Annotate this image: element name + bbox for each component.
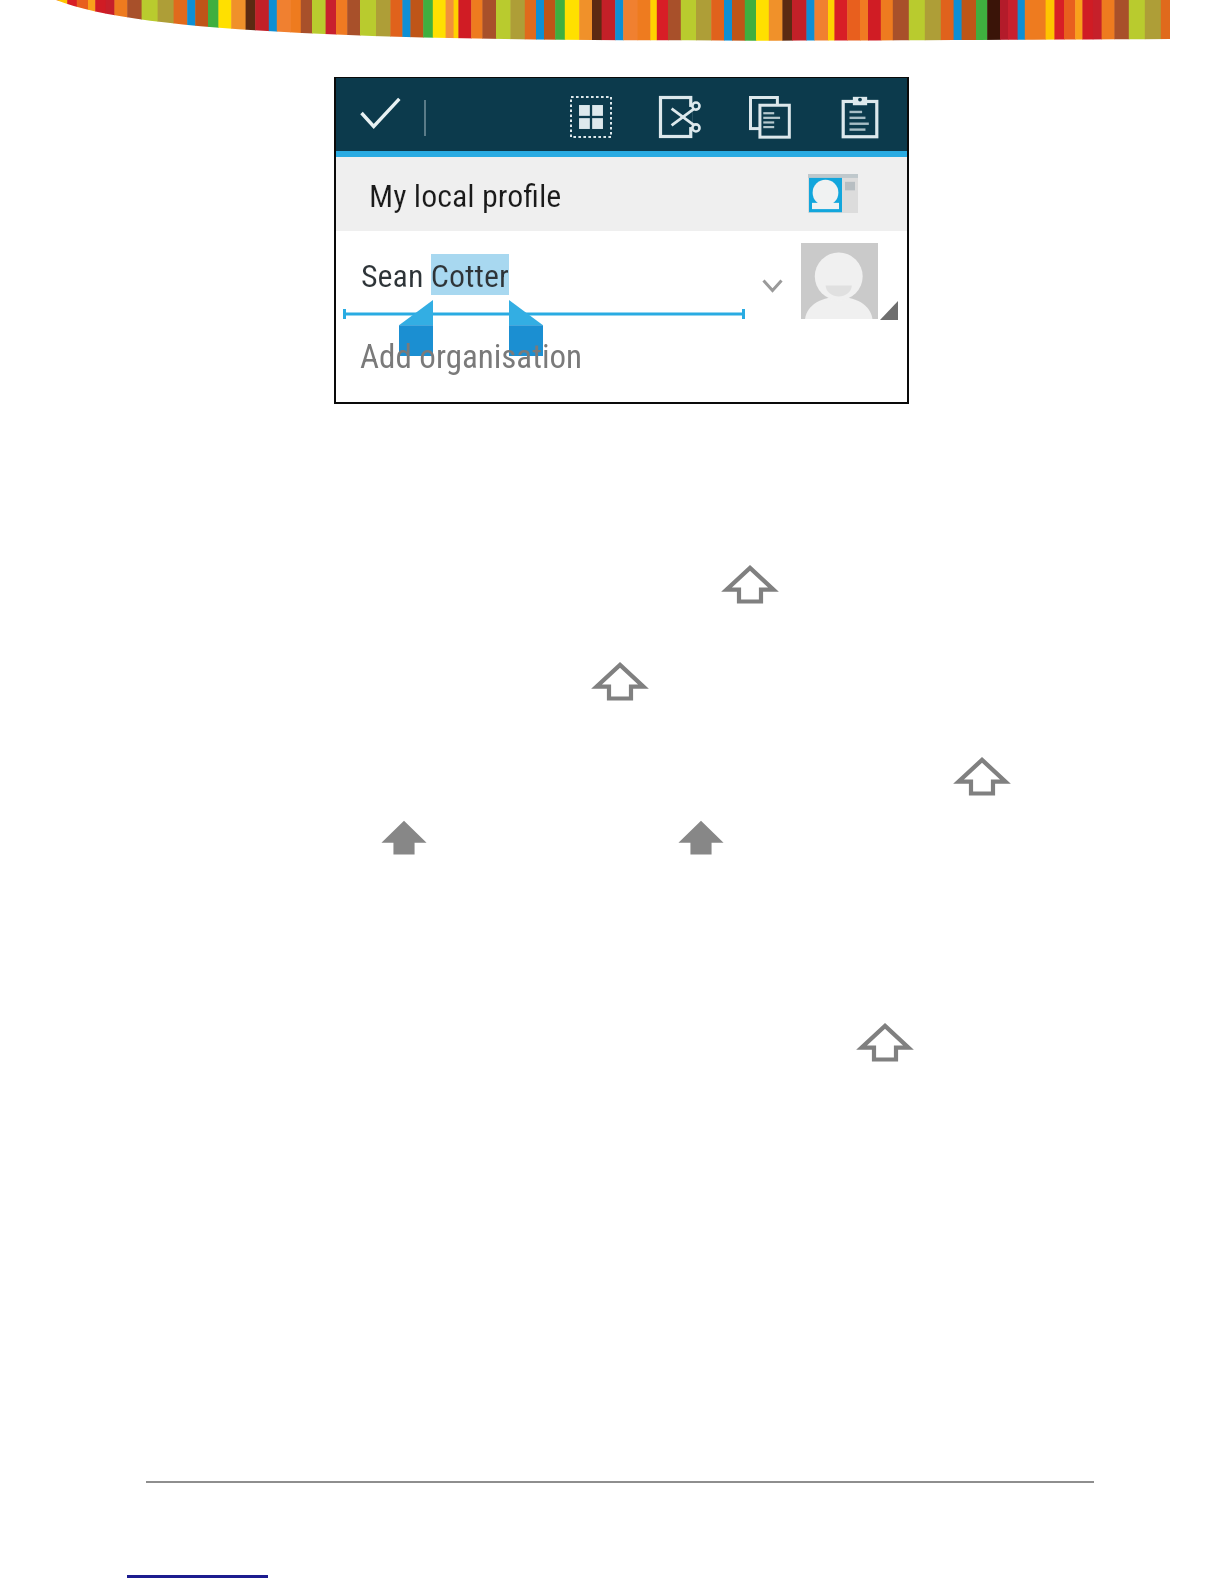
button[interactable]: Sean Cotter <box>336 231 907 402</box>
button[interactable]: Select all <box>569 95 613 139</box>
staticText: Add organisation <box>360 337 583 376</box>
button[interactable]: My local profile <box>336 157 907 231</box>
button[interactable]: Paste <box>838 95 882 139</box>
staticText: Sean Cotter <box>361 257 509 295</box>
button[interactable]: Done <box>348 82 412 144</box>
button[interactable]: Contact photo <box>801 243 878 319</box>
staticText: My local profile <box>369 177 562 215</box>
button[interactable]: Expand <box>754 268 790 302</box>
button[interactable]: Copy <box>748 95 792 139</box>
button[interactable]: Edit profile card <box>808 174 858 213</box>
button[interactable]: Cut <box>658 95 702 139</box>
